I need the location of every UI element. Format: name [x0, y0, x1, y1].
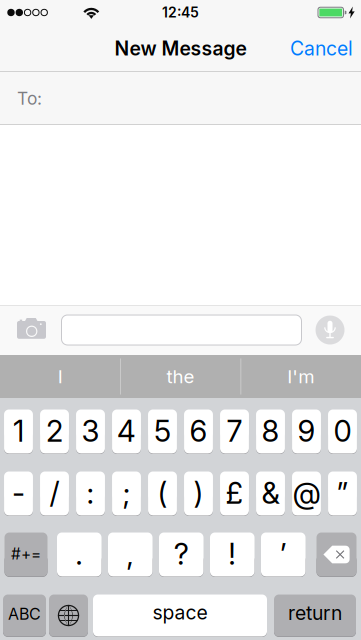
button[interactable]: -: [4, 471, 33, 516]
staticText: -: [12, 475, 25, 511]
button[interactable]: Dictate: [315, 315, 344, 344]
staticText: .: [75, 536, 83, 572]
button[interactable]: ABC: [3, 594, 46, 637]
staticText: 5: [154, 413, 171, 449]
staticText: 9: [297, 413, 315, 449]
button[interactable]: .: [57, 532, 101, 577]
button[interactable]: 3: [76, 409, 105, 454]
staticText: ’: [280, 536, 287, 572]
staticText: &: [261, 475, 279, 511]
staticText: 0: [333, 413, 351, 449]
button[interactable]: 4: [112, 409, 141, 454]
button[interactable]: ;: [112, 471, 141, 516]
button[interactable]: ,: [108, 532, 152, 577]
button[interactable]: :: [76, 471, 105, 516]
staticText: Cancel: [290, 37, 353, 60]
staticText: 12:45: [162, 4, 199, 21]
staticText: 7: [226, 413, 242, 449]
button[interactable]: I'm: [241, 355, 361, 398]
staticText: #+=: [11, 545, 41, 563]
button[interactable]: return: [274, 594, 356, 637]
button[interactable]: 5: [148, 409, 177, 454]
button[interactable]: 8: [256, 409, 285, 454]
staticText: space: [152, 601, 207, 624]
button[interactable]: Delete: [316, 532, 356, 577]
button[interactable]: [61, 315, 301, 345]
button[interactable]: 7: [220, 409, 249, 454]
button[interactable]: the: [120, 355, 241, 398]
button[interactable]: ’: [261, 532, 305, 577]
staticText: ): [193, 475, 203, 511]
staticText: 2: [46, 413, 63, 449]
staticText: 4: [117, 413, 136, 449]
staticText: ;: [122, 475, 130, 511]
staticText: @: [292, 475, 320, 511]
button[interactable]: ): [184, 471, 213, 516]
staticText: 3: [81, 413, 99, 449]
button[interactable]: !: [210, 532, 254, 577]
staticText: the: [166, 365, 194, 388]
button[interactable]: &: [256, 471, 285, 516]
staticText: 1: [13, 413, 24, 449]
button[interactable]: £: [220, 471, 249, 516]
button[interactable]: #+=: [4, 532, 47, 577]
staticText: New Message: [114, 37, 246, 60]
button[interactable]: 1: [4, 409, 33, 454]
button[interactable]: @: [292, 471, 321, 516]
button[interactable]: 2: [40, 409, 69, 454]
staticText: To:: [17, 88, 42, 109]
button[interactable]: Next keyboard: [49, 594, 88, 637]
staticText: ”: [336, 475, 348, 511]
button[interactable]: /: [40, 471, 69, 516]
button[interactable]: space: [93, 594, 267, 637]
staticText: ?: [174, 536, 189, 572]
staticText: I: [58, 365, 63, 388]
button[interactable]: 6: [184, 409, 213, 454]
staticText: 6: [189, 413, 207, 449]
button[interactable]: I: [0, 355, 120, 398]
button[interactable]: Cancel: [273, 25, 361, 72]
staticText: I'm: [287, 365, 314, 388]
staticText: ABC: [8, 604, 41, 624]
staticText: /: [49, 475, 59, 511]
staticText: £: [225, 475, 243, 511]
button[interactable]: (: [148, 471, 177, 516]
button[interactable]: Take photo: [16, 318, 46, 342]
staticText: ,: [126, 536, 134, 572]
button[interactable]: ”: [328, 471, 357, 516]
staticText: (: [157, 475, 167, 511]
button[interactable]: 9: [292, 409, 321, 454]
button[interactable]: ?: [159, 532, 203, 577]
staticText: return: [288, 601, 342, 625]
staticText: !: [228, 536, 236, 572]
button[interactable]: 0: [328, 409, 357, 454]
staticText: 8: [261, 413, 279, 449]
staticText: :: [86, 475, 94, 511]
